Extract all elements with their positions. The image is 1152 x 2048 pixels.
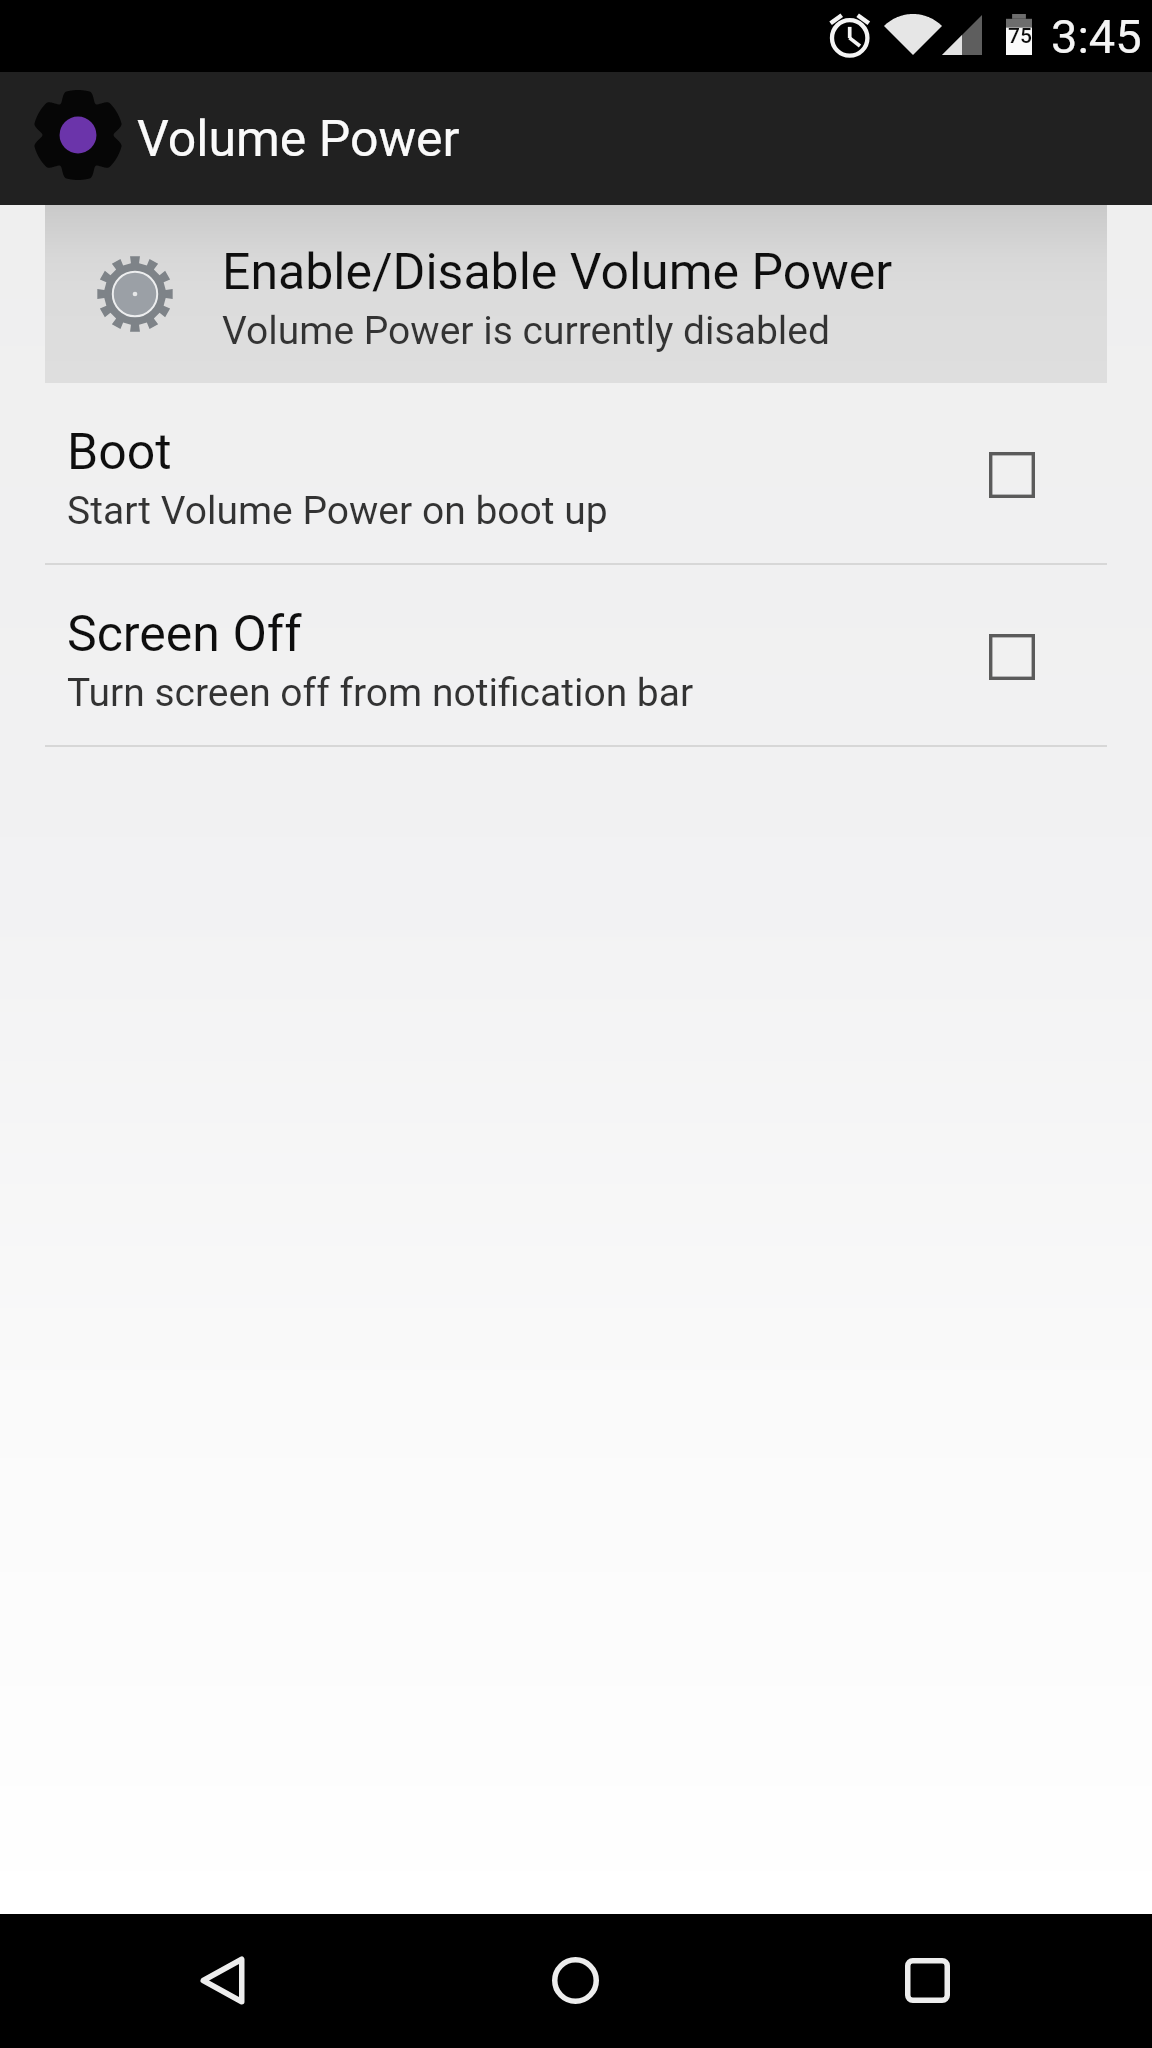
staticText: 75 <box>1008 24 1032 49</box>
staticText: 3:45 <box>1051 9 1142 64</box>
button[interactable]: Screen Off <box>0 565 1152 745</box>
button[interactable]: Home <box>510 1915 641 2046</box>
staticText: Volume Power is currently disabled <box>222 308 830 354</box>
other: Volume Power app icon <box>33 90 123 180</box>
staticText: Boot <box>67 423 172 482</box>
button[interactable]: Boot <box>0 383 1152 563</box>
staticText: Screen Off <box>67 605 302 664</box>
button[interactable]: Enable/Disable Volume Power <box>45 205 1107 383</box>
staticText: Enable/Disable Volume Power <box>222 243 893 302</box>
staticText: Turn screen off from notification bar <box>67 670 694 716</box>
button[interactable]: Recent apps <box>862 1915 993 2046</box>
button[interactable]: Back <box>157 1915 288 2046</box>
staticText: Volume Power <box>137 110 460 169</box>
staticText: Start Volume Power on boot up <box>67 488 608 534</box>
